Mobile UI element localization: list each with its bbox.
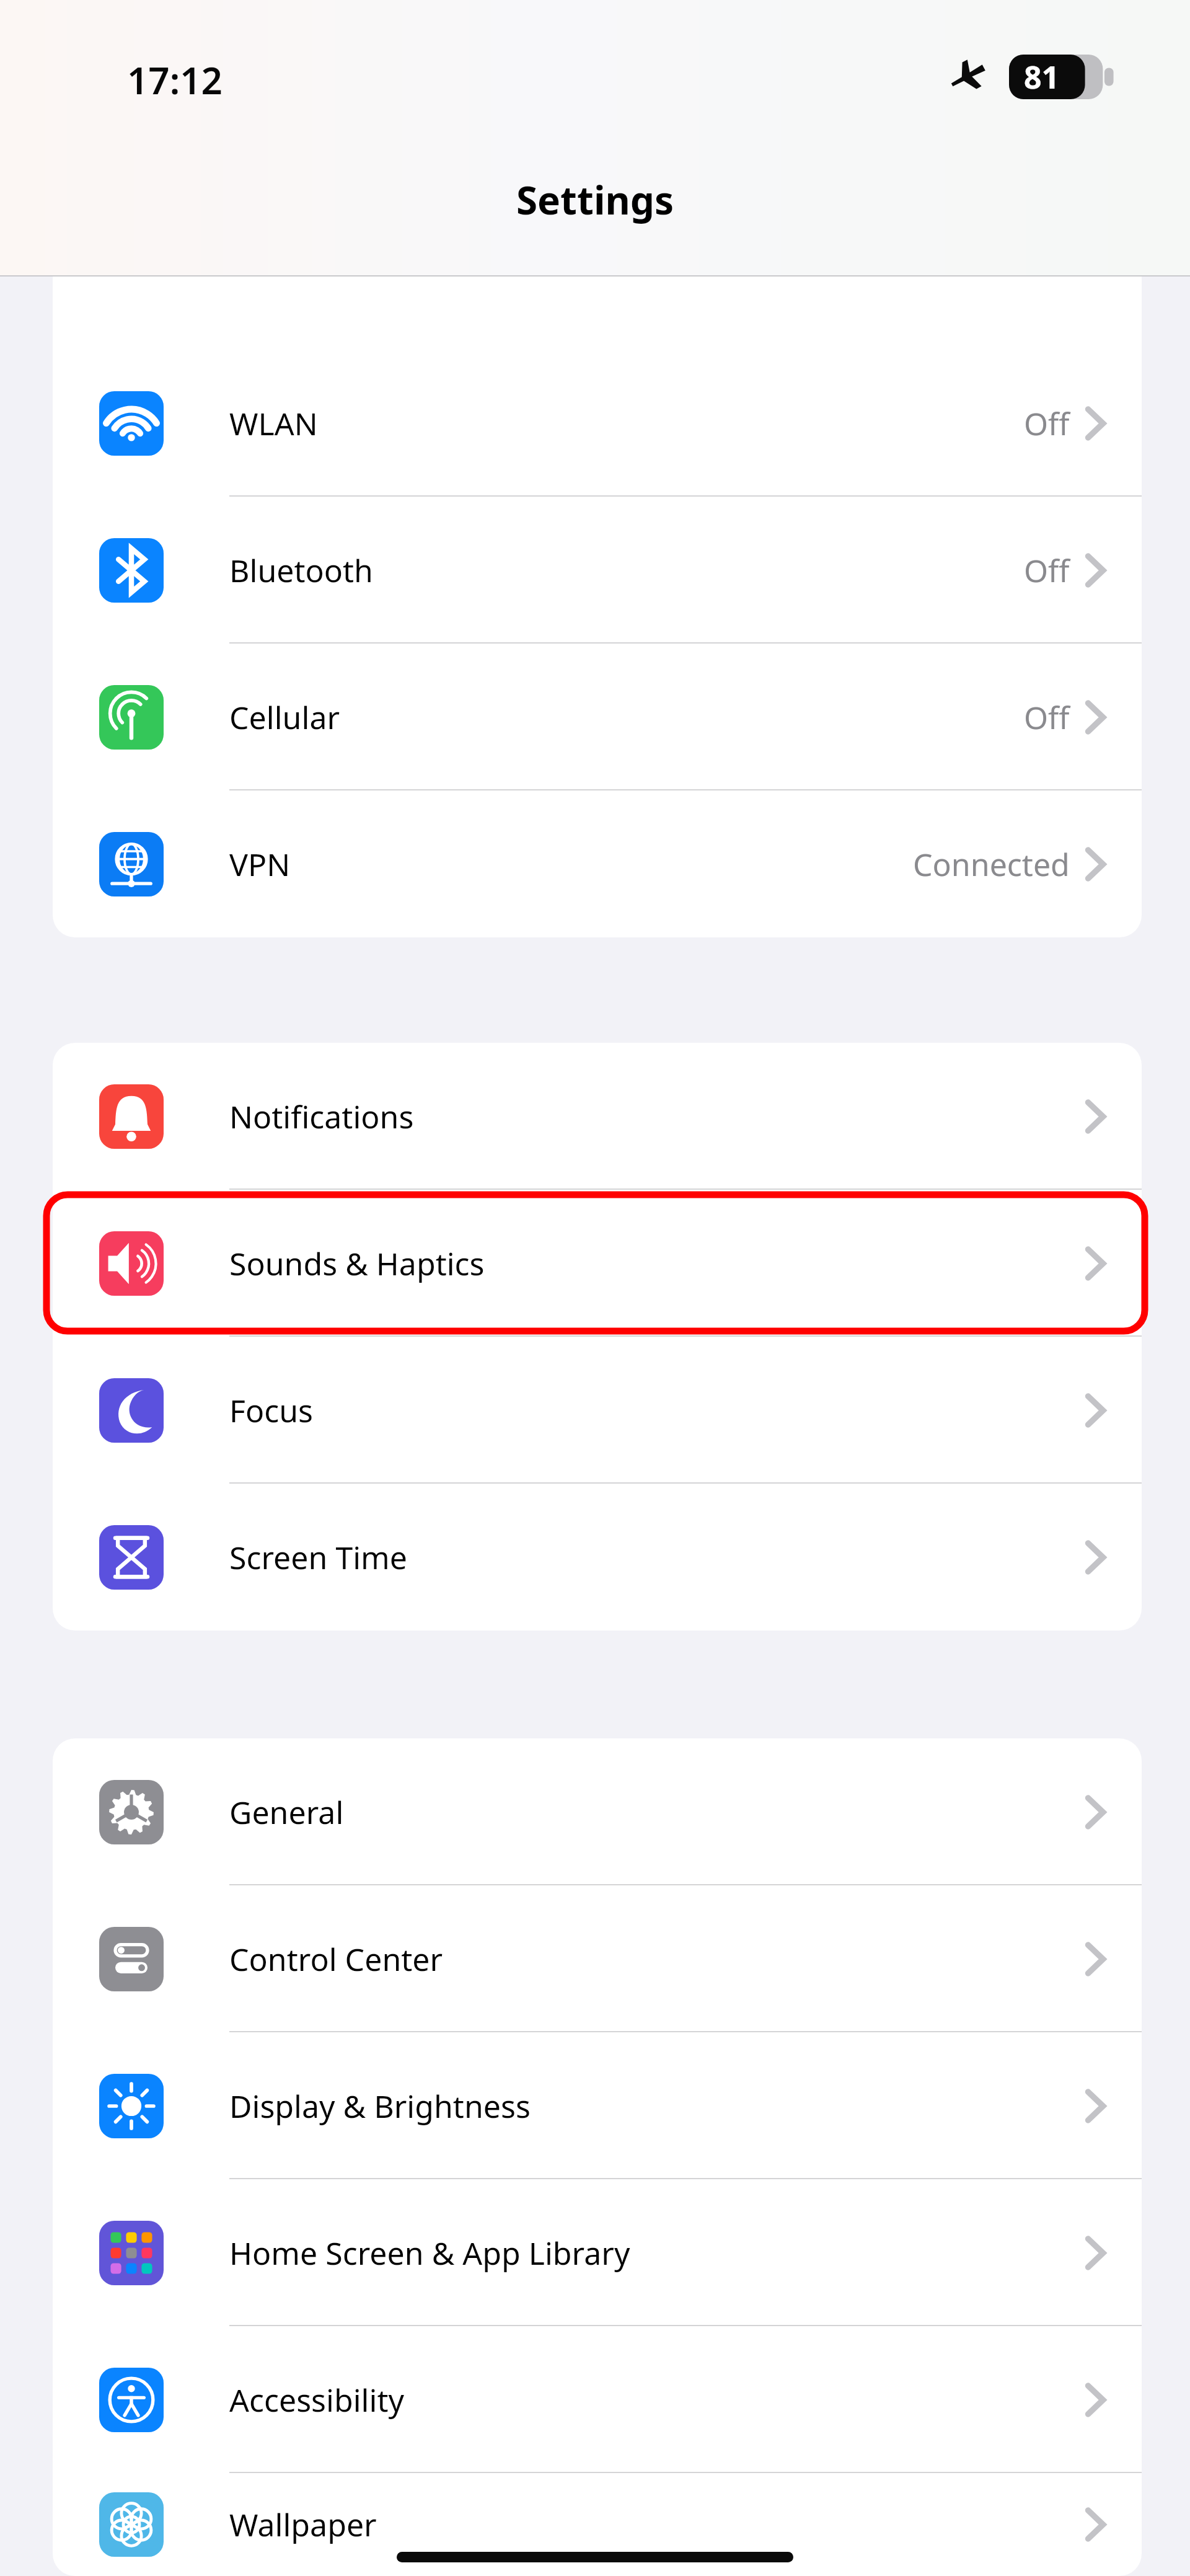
button[interactable]: Sounds & Haptics [53,1190,1142,1337]
staticText: Connected [913,843,1070,885]
button[interactable]: General [53,1738,1142,1885]
staticText: Accessibility [229,2379,404,2421]
staticText: Notifications [229,1095,414,1138]
staticText: Bluetooth [229,549,373,591]
button[interactable]: Control Center [53,1885,1142,2032]
staticText: 17:12 [127,55,223,105]
button[interactable]: Notifications [53,1043,1142,1190]
button[interactable]: Bluetooth [53,497,1142,644]
staticText: Wallpaper [229,2503,377,2546]
staticText: Control Center [229,1938,443,1980]
staticText: Settings [0,174,1190,226]
button[interactable]: Home Screen & App Library [53,2179,1142,2326]
button[interactable]: Display & Brightness [53,2032,1142,2179]
button[interactable]: Cellular [53,644,1142,790]
staticText: General [229,1791,344,1833]
staticText: Cellular [229,696,340,738]
button[interactable]: Screen Time [53,1484,1142,1631]
staticText: WLAN [229,402,318,445]
button[interactable]: Wallpaper [53,2473,1142,2576]
staticText: Display & Brightness [229,2085,531,2127]
staticText: Home Screen & App Library [229,2232,630,2274]
staticText: Focus [229,1389,314,1432]
staticText: Screen Time [229,1536,408,1578]
button[interactable]: VPN [53,790,1142,937]
staticText: Sounds & Haptics [229,1242,485,1285]
button[interactable]: Focus [53,1337,1142,1484]
staticText: Off [1024,549,1070,591]
button[interactable]: WLAN [53,350,1142,497]
staticText: VPN [229,843,291,885]
button[interactable]: Accessibility [53,2326,1142,2473]
staticText: 81 [1024,56,1060,98]
staticText: Off [1024,402,1070,445]
staticText: Off [1024,696,1070,738]
